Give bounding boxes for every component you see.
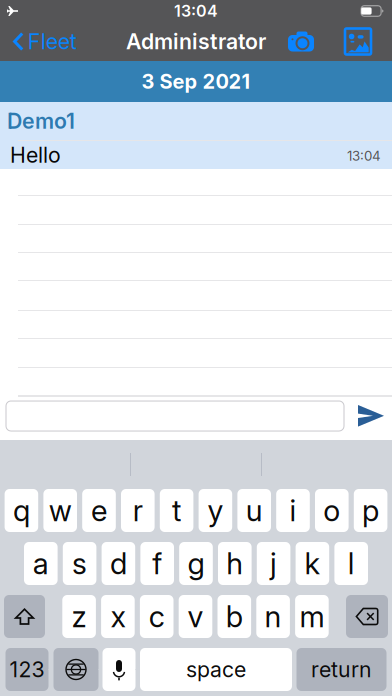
- button[interactable]: Delete: [346, 595, 388, 638]
- button[interactable]: Camera: [281, 22, 321, 61]
- button[interactable]: t: [160, 489, 193, 532]
- button[interactable]: Fleet: [0, 22, 87, 61]
- button[interactable]: o: [315, 489, 349, 532]
- staticText: Demo1: [7, 108, 75, 134]
- staticText: Hello: [10, 142, 61, 168]
- button[interactable]: Send: [354, 400, 388, 432]
- button[interactable]: g: [179, 542, 213, 585]
- button[interactable]: w: [43, 489, 77, 532]
- button[interactable]: y: [199, 489, 232, 532]
- button[interactable]: i: [276, 489, 310, 532]
- staticText: j: [270, 546, 277, 581]
- staticText: i: [289, 493, 296, 528]
- button[interactable]: c: [140, 595, 173, 638]
- staticText: l: [348, 546, 355, 581]
- staticText: n: [265, 599, 282, 634]
- staticText: 123: [9, 657, 44, 682]
- button[interactable]: Photo Library: [339, 22, 377, 61]
- staticText: y: [207, 493, 223, 528]
- button[interactable]: k: [296, 542, 329, 585]
- button[interactable]: f: [140, 542, 174, 585]
- staticText: k: [304, 546, 320, 581]
- button[interactable]: d: [102, 542, 135, 585]
- button[interactable]: u: [237, 489, 271, 532]
- button[interactable]: Dictate: [102, 648, 135, 691]
- button[interactable]: s: [63, 542, 96, 585]
- button[interactable]: j: [257, 542, 290, 585]
- button[interactable]: b: [217, 595, 251, 638]
- button[interactable]: q: [5, 489, 38, 532]
- staticText: s: [72, 546, 87, 581]
- button[interactable]: 123: [5, 648, 48, 691]
- staticText: space: [186, 657, 246, 682]
- staticText: c: [149, 599, 165, 634]
- staticText: h: [226, 546, 243, 581]
- button[interactable]: m: [295, 595, 329, 638]
- staticText: a: [33, 546, 49, 581]
- staticText: u: [246, 493, 263, 528]
- button[interactable]: Next keyboard: [53, 648, 98, 691]
- button[interactable]: e: [82, 489, 116, 532]
- staticText: v: [187, 599, 203, 634]
- button[interactable]: p: [354, 489, 387, 532]
- staticText: f: [152, 546, 162, 581]
- button[interactable]: v: [179, 595, 212, 638]
- staticText: m: [299, 599, 324, 634]
- staticText: g: [187, 546, 204, 581]
- staticText: b: [226, 599, 243, 634]
- staticText: t: [172, 493, 181, 528]
- button[interactable]: h: [218, 542, 252, 585]
- button[interactable]: n: [256, 595, 290, 638]
- staticText: d: [110, 546, 127, 581]
- button[interactable]: r: [121, 489, 155, 532]
- staticText: o: [323, 493, 340, 528]
- staticText: 13:04: [174, 1, 218, 21]
- staticText: e: [91, 493, 107, 528]
- staticText: Fleet: [28, 29, 77, 54]
- staticText: p: [362, 493, 379, 528]
- staticText: 13:04: [347, 148, 381, 164]
- staticText: r: [133, 493, 143, 528]
- staticText: 3 Sep 2021: [141, 69, 250, 94]
- staticText: w: [49, 493, 72, 528]
- button[interactable]: space: [140, 648, 292, 691]
- staticText: z: [72, 599, 87, 634]
- staticText: Administrator: [126, 29, 266, 54]
- button[interactable]: l: [334, 542, 368, 585]
- staticText: x: [110, 599, 125, 634]
- button[interactable]: a: [24, 542, 58, 585]
- staticText: q: [13, 493, 30, 528]
- button[interactable]: x: [101, 595, 135, 638]
- button[interactable]: Shift: [4, 595, 45, 638]
- staticText: return: [311, 657, 372, 682]
- button[interactable]: z: [62, 595, 96, 638]
- button[interactable]: return: [296, 648, 386, 691]
